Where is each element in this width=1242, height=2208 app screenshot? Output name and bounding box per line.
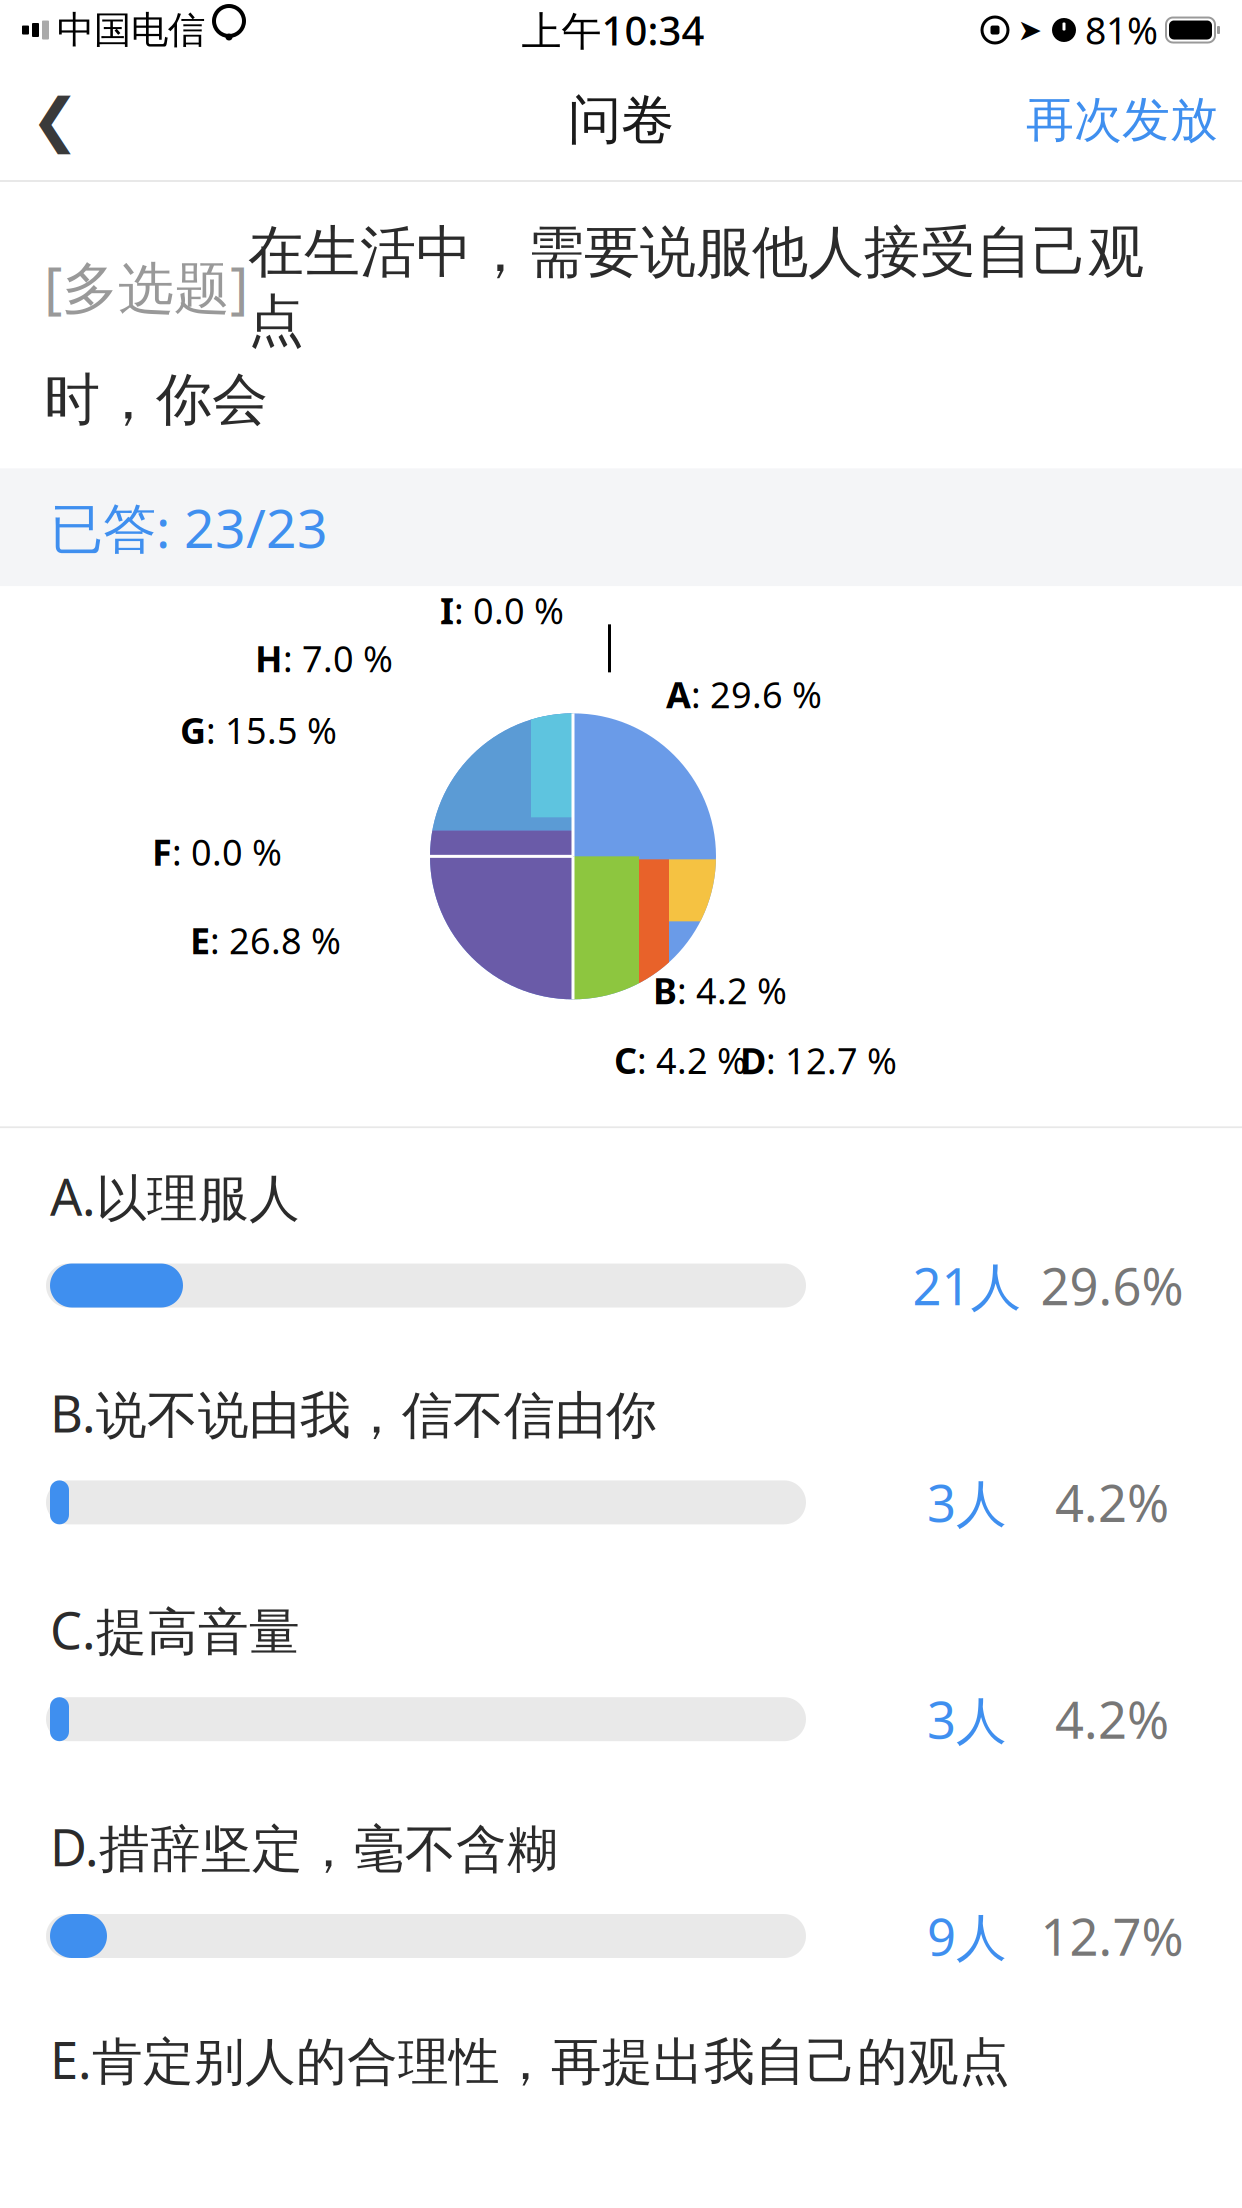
staticText: 再次发放 — [1026, 90, 1218, 149]
staticText: 已答: 23/23 — [50, 492, 328, 563]
staticText: : 0.0 % — [172, 828, 282, 876]
staticText: B.说不说由我，信不信由你 — [50, 1379, 657, 1447]
button[interactable]: A.以理服人 — [0, 1128, 1242, 1345]
staticText: : 4.2 % — [677, 966, 787, 1014]
button[interactable]: Back — [0, 60, 110, 180]
staticText: 在生活中，需要说服他人接受自己观点 — [248, 218, 1144, 356]
staticText: : 7.0 % — [283, 634, 393, 682]
staticText: 3人 — [927, 1686, 1007, 1753]
staticText: : 26.8 % — [210, 916, 341, 964]
staticText: H — [255, 634, 283, 682]
staticText: : 29.6 % — [691, 670, 822, 718]
staticText: I — [440, 586, 454, 634]
staticText: : 4.2 % — [637, 1036, 747, 1084]
staticText: ❮ — [30, 87, 79, 153]
staticText: 81% — [1085, 5, 1158, 55]
staticText: E — [190, 916, 210, 964]
staticText: C — [614, 1036, 637, 1084]
staticText: 中国电信 — [57, 7, 205, 53]
staticText: 12.7% — [1040, 1902, 1183, 1970]
staticText: A.以理服人 — [50, 1162, 300, 1230]
staticText: G — [180, 706, 206, 754]
button[interactable]: B.说不说由我，信不信由你 — [0, 1345, 1242, 1562]
button[interactable]: 再次发放 — [1002, 60, 1242, 180]
staticText: E.肯定别人的合理性，再提出我自己的观点 — [50, 2026, 1010, 2093]
staticText: D — [740, 1036, 766, 1084]
staticText: 上午10:34 — [521, 3, 704, 56]
staticText: : 15.5 % — [206, 706, 337, 754]
staticText: A — [666, 670, 691, 718]
staticText: [多选题] — [44, 250, 248, 324]
staticText: 3人 — [927, 1469, 1007, 1536]
staticText: 4.2% — [1055, 1686, 1169, 1753]
staticText: 4.2% — [1055, 1469, 1169, 1536]
staticText: 29.6% — [1040, 1252, 1183, 1319]
staticText: 时，你会 — [44, 366, 268, 434]
staticText: : 12.7 % — [766, 1036, 897, 1084]
staticText: : 0.0 % — [454, 586, 564, 634]
staticText: ➤ — [1017, 13, 1042, 47]
staticText: B — [653, 966, 677, 1014]
staticText: 问卷 — [568, 87, 674, 153]
staticText: 21人 — [912, 1252, 1021, 1319]
button[interactable]: C.提高音量 — [0, 1562, 1242, 1779]
button[interactable]: D.措辞坚定，毫不含糊 — [0, 1779, 1242, 1996]
staticText: D.措辞坚定，毫不含糊 — [50, 1813, 558, 1880]
staticText: F — [152, 828, 172, 876]
staticText: 9人 — [927, 1902, 1007, 1970]
staticText: C.提高音量 — [50, 1596, 300, 1663]
